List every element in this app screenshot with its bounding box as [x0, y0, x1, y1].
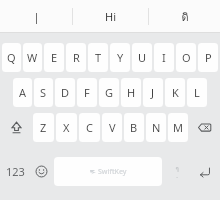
button[interactable]: Shift	[2, 113, 31, 142]
staticText: U	[138, 50, 147, 65]
button[interactable]: E	[44, 43, 64, 72]
button[interactable]: O	[176, 43, 196, 72]
staticText: W	[27, 50, 38, 65]
button[interactable]: Space	[54, 157, 162, 186]
button[interactable]: F	[77, 78, 97, 107]
button[interactable]: Q	[2, 43, 21, 72]
button[interactable]: N	[146, 113, 166, 142]
button[interactable]: A	[13, 78, 32, 107]
staticText: A	[19, 85, 27, 100]
staticText: L	[194, 85, 200, 100]
button[interactable]: |	[0, 0, 72, 33]
button[interactable]: V	[102, 113, 122, 142]
button[interactable]: ดิ	[149, 0, 220, 33]
staticText: I	[162, 50, 166, 65]
staticText: Z	[40, 120, 47, 135]
button[interactable]: 123	[1, 157, 29, 186]
button[interactable]: M	[168, 113, 188, 142]
staticText: Hi	[105, 9, 116, 24]
button[interactable]: S	[34, 78, 53, 107]
staticText: E	[51, 50, 58, 65]
button[interactable]: Hi	[73, 0, 148, 33]
staticText: Y	[117, 50, 124, 65]
staticText: X	[63, 120, 70, 135]
button[interactable]: Backspace	[190, 113, 218, 142]
button[interactable]: Emoji	[29, 157, 53, 186]
staticText: N	[152, 120, 161, 135]
staticText: ดิ	[181, 8, 189, 25]
button[interactable]: U	[132, 43, 152, 72]
staticText: ๆ .	[175, 164, 179, 180]
staticText: R	[73, 50, 80, 65]
button[interactable]: X	[56, 113, 77, 142]
staticText: 123	[6, 164, 25, 179]
button[interactable]: J	[143, 78, 163, 107]
staticText: B	[130, 120, 138, 135]
staticText: |	[33, 9, 40, 24]
staticText: J	[151, 85, 155, 100]
button[interactable]: I	[154, 43, 174, 72]
staticText: K	[172, 85, 179, 100]
button[interactable]: H	[121, 78, 141, 107]
staticText: SwiftKey	[98, 167, 127, 177]
button[interactable]: P	[198, 43, 218, 72]
staticText: G	[105, 85, 114, 100]
button[interactable]: K	[165, 78, 185, 107]
button[interactable]: L	[187, 78, 207, 107]
button[interactable]: Y	[110, 43, 130, 72]
button[interactable]: Enter	[190, 157, 219, 186]
button[interactable]: D	[55, 78, 75, 107]
staticText: Q	[7, 50, 16, 65]
staticText: F	[84, 85, 90, 100]
staticText: P	[205, 50, 212, 65]
staticText: C	[86, 120, 93, 135]
button[interactable]: R	[66, 43, 86, 72]
staticText: S	[40, 85, 47, 100]
button[interactable]: G	[99, 78, 119, 107]
button[interactable]: W	[23, 43, 42, 72]
button[interactable]: C	[79, 113, 100, 142]
staticText: T	[95, 50, 102, 65]
button[interactable]: T	[88, 43, 108, 72]
button[interactable]: B	[124, 113, 144, 142]
staticText: D	[61, 85, 70, 100]
staticText: H	[127, 85, 136, 100]
staticText: O	[182, 50, 191, 65]
staticText: M	[173, 120, 183, 135]
staticText: V	[109, 120, 116, 135]
button[interactable]: Z	[33, 113, 54, 142]
